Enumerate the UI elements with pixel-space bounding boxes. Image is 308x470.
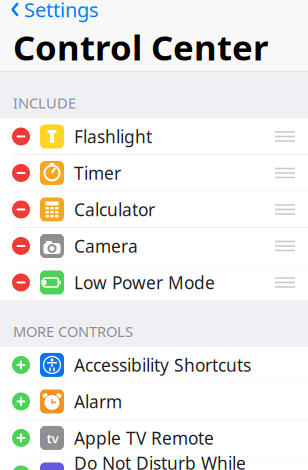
staticText: Camera (74, 234, 138, 257)
button[interactable]: Low Power Mode (0, 264, 308, 300)
staticText: Settings (24, 0, 99, 23)
button[interactable]: Alarm (0, 383, 308, 419)
button[interactable]: Calculator (0, 191, 308, 227)
staticText: Calculator (74, 198, 155, 221)
staticText: INCLUDE (13, 93, 76, 112)
button[interactable]: Do Not Disturb While Driving (0, 456, 308, 470)
button[interactable]: Settings (0, 0, 308, 20)
staticText: Control Center (13, 24, 268, 70)
button[interactable]: Accessibility Shortcuts (0, 347, 308, 383)
staticText: Alarm (74, 390, 122, 413)
button[interactable] (0, 420, 308, 456)
staticText: Do Not Disturb While Driving (74, 451, 246, 470)
button[interactable]: Flashlight (0, 118, 308, 154)
staticText: MORE CONTROLS (13, 321, 133, 341)
staticText: Timer (74, 161, 121, 184)
staticText: Flashlight (74, 125, 152, 148)
staticText: Accessibility Shortcuts (74, 353, 251, 376)
staticText: Low Power Mode (74, 271, 215, 294)
button[interactable]: Timer (0, 155, 308, 191)
staticText: tv (46, 429, 58, 447)
staticText: Apple TV Remote (74, 426, 214, 449)
button[interactable]: Camera (0, 228, 308, 264)
